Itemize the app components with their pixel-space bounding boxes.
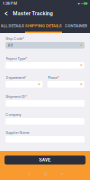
staticText: Shipment ID bbox=[5, 94, 25, 99]
button[interactable]: SHIPPING DETAILS bbox=[25, 20, 62, 33]
staticText: * bbox=[25, 94, 27, 99]
staticText: CONTAINER bbox=[64, 23, 87, 28]
button[interactable]: Back bbox=[24, 169, 34, 179]
button[interactable] bbox=[47, 81, 84, 88]
button[interactable] bbox=[5, 62, 84, 69]
staticText: * bbox=[57, 75, 59, 80]
staticText: Company bbox=[5, 112, 21, 117]
staticText: ALL DETAILS bbox=[0, 23, 24, 28]
staticText: SHIPPING DETAILS bbox=[25, 23, 62, 28]
button[interactable]: ALL DETAILS bbox=[0, 20, 25, 33]
button[interactable]: SAVE bbox=[4, 155, 85, 164]
staticText: 1:38 PM bbox=[2, 1, 16, 6]
button[interactable] bbox=[5, 81, 42, 88]
staticText: Department bbox=[5, 75, 24, 80]
staticText: Master Tracking bbox=[13, 10, 53, 17]
staticText: * bbox=[24, 75, 26, 80]
button[interactable]: All bbox=[5, 42, 84, 49]
staticText: SAVE bbox=[39, 157, 51, 163]
button[interactable]: Recent apps bbox=[57, 169, 67, 179]
staticText: * bbox=[22, 36, 24, 41]
staticText: * bbox=[25, 56, 27, 61]
staticText: Phase bbox=[47, 75, 57, 80]
button[interactable]: Home bbox=[40, 169, 50, 179]
staticText: Project Type bbox=[5, 56, 25, 61]
staticText: ▾ ⌁ bbox=[78, 1, 83, 6]
staticText: Supplier Name bbox=[5, 130, 29, 135]
staticText: Ship Code bbox=[5, 36, 22, 41]
button[interactable]: CONTAINER bbox=[62, 20, 90, 33]
staticText: All bbox=[8, 43, 13, 47]
button[interactable]: Back bbox=[0, 7, 13, 20]
